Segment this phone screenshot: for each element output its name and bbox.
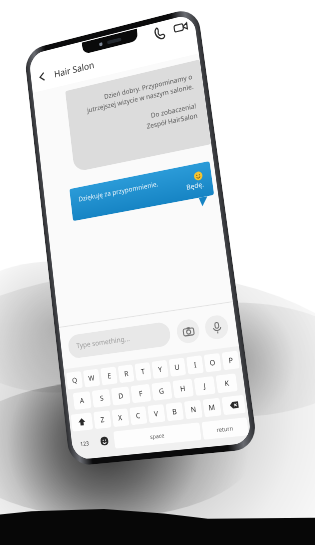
button[interactable]: Camera <box>175 318 201 345</box>
staticText: I <box>193 360 198 371</box>
staticText: S <box>99 393 104 404</box>
staticText: K <box>224 378 230 389</box>
staticText: F <box>138 389 143 399</box>
button[interactable]: Z <box>93 410 112 429</box>
staticText: Do zobaczenia! Zespół HairSalon <box>78 101 198 145</box>
button[interactable]: Shift <box>70 412 93 432</box>
button[interactable]: 123 <box>73 433 97 453</box>
staticText: O <box>209 358 216 369</box>
button[interactable]: H <box>172 378 194 398</box>
staticText: R <box>124 369 130 379</box>
staticText: space <box>149 431 165 440</box>
staticText: Q <box>72 375 78 386</box>
button[interactable]: M <box>202 397 222 417</box>
button[interactable]: C <box>129 406 147 425</box>
button[interactable]: Type something... <box>67 321 172 359</box>
staticText: P <box>228 355 234 366</box>
button[interactable]: N <box>184 400 203 419</box>
staticText: C <box>135 411 141 422</box>
staticText: H <box>180 383 187 395</box>
button[interactable]: E <box>100 366 118 385</box>
staticText: T <box>140 367 145 377</box>
button[interactable]: D <box>111 386 131 406</box>
button[interactable]: space <box>113 422 202 449</box>
button[interactable]: Delete <box>221 395 246 415</box>
staticText: Y <box>158 364 163 375</box>
button[interactable]: A <box>73 391 92 410</box>
button[interactable]: P <box>221 350 240 370</box>
button[interactable]: return <box>201 417 249 440</box>
staticText: J <box>203 381 206 392</box>
button[interactable]: I <box>186 355 204 375</box>
button[interactable]: Y <box>151 360 169 379</box>
button[interactable]: R <box>118 364 135 383</box>
button[interactable]: Dzień dobry. Przypominamy o jutrzejszej … <box>65 59 211 172</box>
button[interactable]: G <box>151 381 173 401</box>
staticText: U <box>174 362 181 373</box>
staticText: Type something... <box>76 334 131 351</box>
button[interactable]: Video call <box>172 18 189 37</box>
button[interactable]: U <box>169 357 186 377</box>
button[interactable]: V <box>147 404 166 423</box>
staticText: M <box>208 402 216 414</box>
staticText: Z <box>100 415 106 425</box>
staticText: X <box>118 413 123 423</box>
button[interactable]: B <box>165 402 184 421</box>
button[interactable]: J <box>194 376 216 396</box>
button[interactable]: T <box>134 362 152 381</box>
button[interactable]: Call <box>152 24 168 42</box>
staticText: W <box>88 373 95 384</box>
staticText: G <box>158 386 165 397</box>
staticText: E <box>107 371 112 382</box>
button[interactable]: O <box>204 353 222 372</box>
button[interactable]: Voice message <box>204 314 230 341</box>
button[interactable]: K <box>215 373 238 393</box>
button[interactable]: Dziękuję za przypomnienie. <box>69 161 215 230</box>
button[interactable]: Back <box>35 68 50 86</box>
staticText: B <box>172 407 178 418</box>
staticText: Dziękuję za przypomnienie. <box>78 173 192 204</box>
staticText: V <box>153 409 159 420</box>
button[interactable]: Q <box>66 371 83 390</box>
staticText: 123 <box>80 439 90 447</box>
staticText: return <box>216 424 234 433</box>
button[interactable]: S <box>92 389 111 408</box>
staticText: A <box>79 396 85 406</box>
button[interactable]: Emoji <box>95 431 114 451</box>
button[interactable]: W <box>83 369 100 388</box>
button[interactable]: X <box>112 408 129 427</box>
staticText: Będę. <box>79 179 204 212</box>
staticText: Hair Salon <box>53 58 95 80</box>
staticText: N <box>190 404 197 416</box>
staticText: Dzień dobry. Przypominamy o jutrzejszej … <box>75 72 194 117</box>
button[interactable]: F <box>130 384 151 403</box>
staticText: D <box>118 391 125 402</box>
